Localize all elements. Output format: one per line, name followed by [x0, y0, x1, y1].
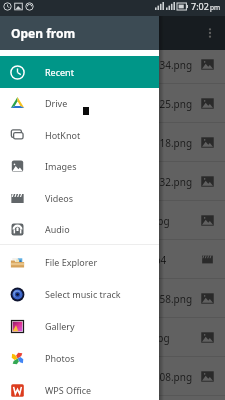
staticText: Select music track	[45, 288, 121, 300]
staticText: Screenshot_2016-10-25-19-02-34.png	[18, 58, 193, 72]
button[interactable]: Drive	[0, 87, 159, 119]
staticText: VID_20161025_185630_HD.mp4	[18, 253, 167, 267]
button[interactable]: Screenshot_2016-10-25-19-02-25.png	[0, 84, 225, 123]
staticText: Photos	[45, 352, 75, 364]
button[interactable]: Photos	[0, 342, 159, 374]
staticText: IMG_20161025_185501_HDR.jpg	[18, 331, 170, 345]
button[interactable]: Images	[0, 150, 159, 182]
button[interactable]: Screenshot_2016-10-25-18-55-58.png	[0, 279, 225, 318]
staticText: Videos	[45, 192, 74, 204]
staticText: WPS Office	[45, 384, 92, 396]
button[interactable]: Audio	[0, 213, 159, 245]
staticText: Screenshot_2016-10-25-18-54-08.png	[18, 370, 193, 384]
button[interactable]: Screenshot_2016-10-25-18-57-32.png	[0, 162, 225, 201]
staticText: Audio	[45, 223, 70, 235]
staticText: Drive	[45, 97, 68, 109]
button[interactable]: WPS Office	[0, 374, 159, 400]
button[interactable]: Screenshot_2016-10-25-18-54-08.png	[0, 357, 225, 396]
staticText: HotKnot	[45, 129, 81, 141]
button[interactable]: IMG_20161025_185501_HDR.jpg	[0, 318, 225, 357]
staticText: Screenshot_2016-10-25-18-57-32.png	[18, 175, 193, 189]
staticText: IMG_20161025_185712_HDR.jpg	[18, 214, 170, 228]
button[interactable]: HotKnot	[0, 119, 159, 151]
button[interactable]: File Explorer	[0, 246, 159, 278]
button[interactable]: More options	[195, 18, 225, 48]
button[interactable]: Gallery	[0, 310, 159, 342]
staticText: File Explorer	[45, 256, 98, 268]
staticText: Gallery	[45, 320, 75, 332]
button[interactable]: Select music track	[0, 278, 159, 310]
button[interactable]: VID_20161025_185630_HD.mp4	[0, 240, 225, 279]
staticText: 7:02	[191, 0, 209, 12]
button[interactable]: Screenshot_2016-10-25-18-58-18.png	[0, 123, 225, 162]
button[interactable]: Screenshot_2016-10-25-19-02-34.png	[0, 45, 225, 84]
staticText: Screenshot_2016-10-25-18-55-58.png	[18, 292, 193, 306]
staticText: Open from	[11, 25, 76, 41]
staticText: Screenshot_2016-10-25-18-58-18.png	[18, 136, 193, 150]
staticText: pm	[210, 3, 221, 12]
button[interactable]: Videos	[0, 182, 159, 214]
button[interactable]: Recent	[0, 56, 159, 88]
button[interactable]: IMG_20161025_185712_HDR.jpg	[0, 201, 225, 240]
staticText: Recent	[45, 66, 74, 78]
staticText: Images	[45, 160, 77, 172]
staticText: Screenshot_2016-10-25-19-02-25.png	[18, 97, 193, 111]
